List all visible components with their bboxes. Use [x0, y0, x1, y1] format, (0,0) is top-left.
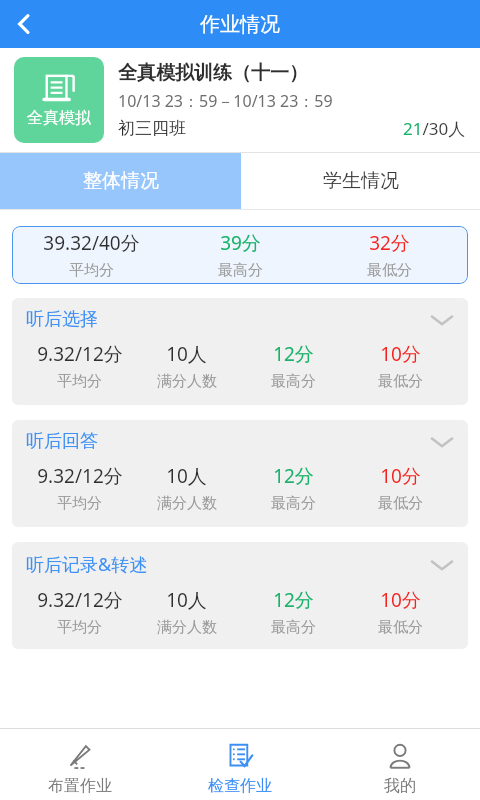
staticText: 最低分 — [378, 618, 423, 637]
staticText: 全真模拟 — [27, 108, 91, 128]
staticText: 最高分 — [271, 494, 316, 513]
staticText: 9.32/12分 — [37, 587, 123, 613]
button[interactable]: 我的 — [320, 729, 480, 800]
staticText: 10分 — [380, 341, 421, 367]
staticText: 9.32/12分 — [37, 463, 123, 489]
staticText: 听后记录&转述 — [26, 552, 148, 577]
staticText: 最高分 — [218, 261, 263, 280]
staticText: 作业情况 — [200, 12, 280, 37]
staticText: 39.32/40分 — [43, 230, 140, 256]
button[interactable]: 学生情况 — [241, 153, 480, 209]
staticText: 10人 — [166, 463, 207, 489]
staticText: 9.32/12分 — [37, 341, 123, 367]
staticText: 12分 — [273, 341, 314, 367]
button[interactable]: Back — [0, 0, 48, 48]
staticText: 平均分 — [57, 372, 102, 391]
staticText: 满分人数 — [157, 372, 217, 391]
staticText: 检查作业 — [208, 776, 272, 796]
staticText: 全真模拟训练（十一） — [118, 61, 308, 85]
staticText: 32分 — [369, 230, 410, 256]
button[interactable]: 听后选择 — [12, 298, 468, 405]
staticText: 平均分 — [57, 494, 102, 513]
button[interactable]: 布置作业 — [0, 729, 160, 800]
staticText: 学生情况 — [323, 169, 399, 193]
button[interactable]: 39.32/40分 — [12, 226, 468, 284]
staticText: 39分 — [220, 230, 261, 256]
staticText: 布置作业 — [48, 776, 112, 796]
staticText: 10人 — [166, 341, 207, 367]
staticText: 最低分 — [367, 261, 412, 280]
staticText: 最高分 — [271, 372, 316, 391]
staticText: 最低分 — [378, 494, 423, 513]
staticText: 听后回答 — [26, 430, 98, 453]
staticText: 我的 — [384, 776, 416, 796]
button[interactable]: 检查作业 — [160, 729, 320, 800]
staticText: 21/30人 — [403, 117, 466, 140]
staticText: 12分 — [273, 587, 314, 613]
staticText: 10/13 23：59－10/13 23：59 — [118, 90, 333, 112]
button[interactable]: 听后回答 — [12, 420, 468, 527]
staticText: 整体情况 — [83, 169, 159, 193]
button[interactable]: 全真模拟 — [0, 48, 480, 152]
staticText: 10分 — [380, 463, 421, 489]
button[interactable]: 整体情况 — [0, 153, 241, 209]
staticText: 最低分 — [378, 372, 423, 391]
staticText: 10人 — [166, 587, 207, 613]
staticText: 平均分 — [69, 261, 114, 280]
staticText: 初三四班 — [118, 118, 186, 139]
staticText: 听后选择 — [26, 308, 98, 331]
staticText: 12分 — [273, 463, 314, 489]
staticText: 平均分 — [57, 618, 102, 637]
staticText: 10分 — [380, 587, 421, 613]
button[interactable]: 听后记录&转述 — [12, 542, 468, 649]
staticText: 满分人数 — [157, 618, 217, 637]
staticText: 满分人数 — [157, 494, 217, 513]
staticText: 最高分 — [271, 618, 316, 637]
